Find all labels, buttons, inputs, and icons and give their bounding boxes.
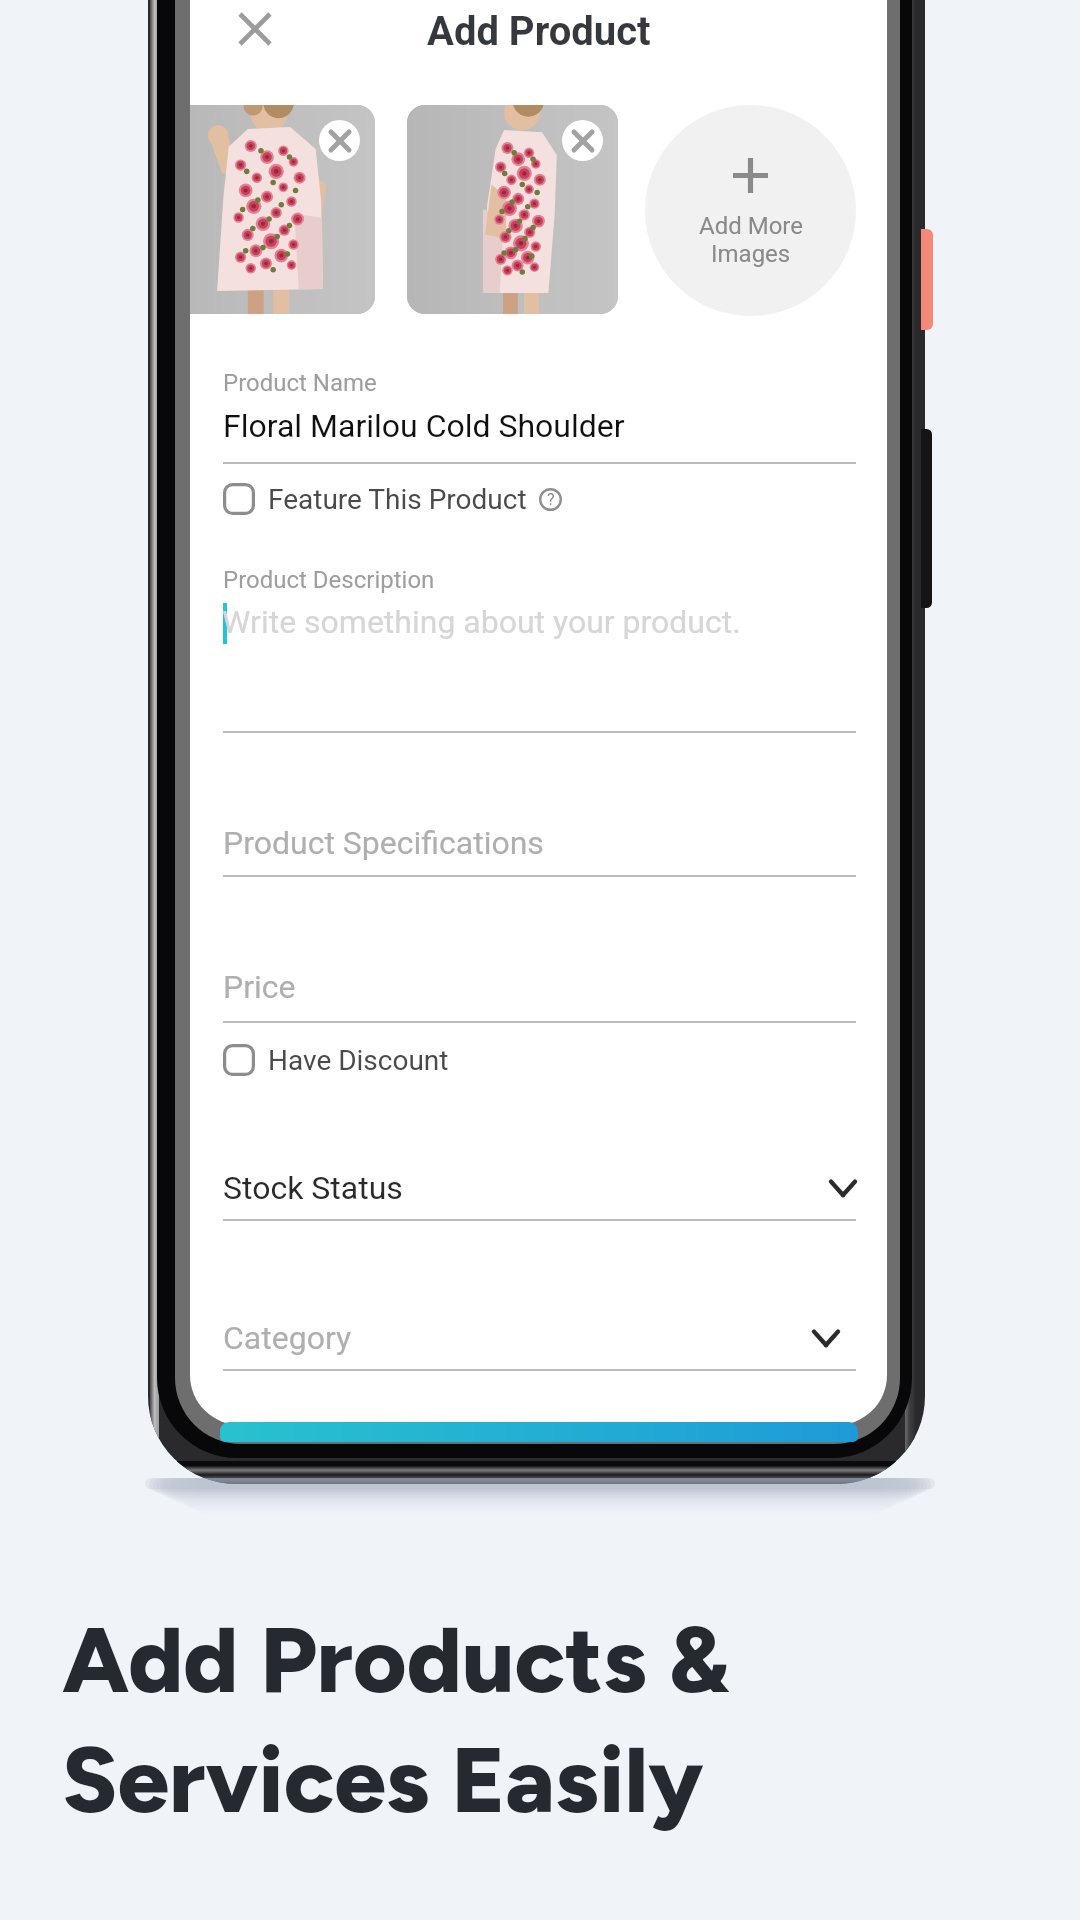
staticText: Have Discount (268, 1044, 449, 1077)
staticText: Write something about your product. (222, 603, 741, 641)
staticText: Price (223, 968, 296, 1006)
button[interactable]: Have Discount (223, 1042, 449, 1078)
button[interactable]: Close (231, 5, 279, 53)
staticText: Stock Status (223, 1169, 403, 1207)
staticText: Add More (699, 212, 803, 240)
staticText: Add Products & (62, 1605, 729, 1715)
staticText: Add Product (427, 8, 651, 55)
staticText: Product Name (223, 369, 377, 397)
button[interactable]: Category (223, 1316, 856, 1360)
staticText: Floral Marilou Cold Shoulder (223, 407, 625, 445)
staticText: ? (547, 490, 555, 509)
staticText: Services Easily (62, 1725, 704, 1835)
button[interactable]: Stock Status (223, 1166, 856, 1210)
button[interactable]: Feature This Product (223, 481, 562, 517)
staticText: Product Specifications (223, 824, 544, 862)
staticText: Category (223, 1319, 352, 1357)
button[interactable]: Remove first image (319, 120, 360, 161)
staticText: Product Description (223, 566, 435, 594)
staticText: Feature This Product (268, 483, 527, 516)
staticText: Images (711, 240, 791, 268)
button[interactable]: Add more images (645, 105, 856, 316)
button[interactable]: Remove second image (562, 120, 603, 161)
